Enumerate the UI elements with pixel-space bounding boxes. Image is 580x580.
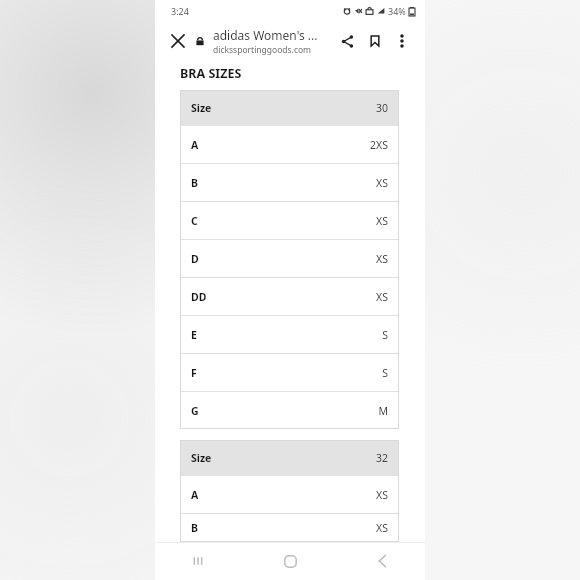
staticText: adidas Women's ...: [213, 27, 318, 43]
staticText: 3:24: [171, 5, 189, 17]
staticText: 32: [375, 451, 388, 465]
staticText: XS: [376, 214, 388, 228]
staticText: Size: [191, 101, 212, 115]
button[interactable]: Close: [165, 28, 191, 54]
staticText: XS: [376, 521, 388, 535]
staticText: M: [378, 404, 388, 418]
button[interactable]: E: [180, 316, 399, 353]
button[interactable]: A: [180, 126, 399, 163]
button[interactable]: Back: [365, 544, 399, 578]
button[interactable]: DD: [180, 278, 399, 315]
staticText: A: [191, 138, 199, 152]
button[interactable]: Size: [180, 440, 399, 476]
staticText: B: [191, 176, 198, 190]
staticText: DD: [191, 290, 207, 304]
staticText: S: [382, 328, 388, 342]
staticText: 2XS: [370, 138, 388, 152]
staticText: Size: [191, 451, 212, 465]
button[interactable]: Home: [273, 544, 307, 578]
button[interactable]: C: [180, 202, 399, 239]
staticText: BRA SIZES: [180, 65, 242, 82]
staticText: XS: [376, 290, 388, 304]
button[interactable]: More options: [389, 28, 415, 54]
staticText: dickssportinggoods.com: [213, 44, 312, 56]
button[interactable]: A: [180, 476, 399, 513]
staticText: D: [191, 252, 199, 266]
staticText: G: [191, 404, 199, 418]
button[interactable]: Size: [180, 90, 399, 126]
staticText: 30: [375, 101, 388, 115]
button[interactable]: Recent apps: [181, 544, 215, 578]
button[interactable]: G: [180, 392, 399, 429]
staticText: C: [191, 214, 198, 228]
staticText: F: [191, 366, 197, 380]
staticText: 34%: [388, 5, 406, 17]
button[interactable]: Share: [333, 27, 361, 55]
button[interactable]: B: [180, 514, 399, 542]
staticText: XS: [376, 488, 388, 502]
staticText: E: [191, 328, 197, 342]
staticText: A: [191, 488, 199, 502]
button[interactable]: D: [180, 240, 399, 277]
staticText: S: [382, 366, 388, 380]
staticText: XS: [376, 176, 388, 190]
button[interactable]: F: [180, 354, 399, 391]
staticText: XS: [376, 252, 388, 266]
button[interactable]: B: [180, 164, 399, 201]
button[interactable]: Bookmark: [361, 27, 389, 55]
staticText: B: [191, 521, 198, 535]
